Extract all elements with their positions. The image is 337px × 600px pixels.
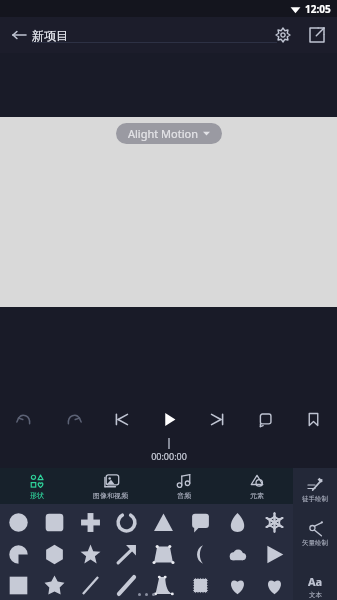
- button[interactable]: Loop: [241, 400, 289, 438]
- button[interactable]: Skip to start: [97, 400, 145, 438]
- button[interactable]: Shape 15: [219, 538, 256, 570]
- button[interactable]: Shape 23: [219, 570, 256, 600]
- button[interactable]: Shape 18: [36, 570, 72, 600]
- button[interactable]: 形状: [0, 468, 74, 504]
- button[interactable]: Shape 9: [0, 538, 36, 570]
- staticText: 00:00:00: [151, 450, 187, 462]
- button[interactable]: Shape 4: [108, 506, 145, 538]
- button[interactable]: Shape 14: [182, 538, 219, 570]
- button[interactable]: Shape 11: [72, 538, 108, 570]
- button[interactable]: Shape 21: [145, 570, 182, 600]
- staticText: 12:05: [305, 2, 331, 16]
- staticText: Aa: [308, 574, 323, 589]
- button[interactable]: Shape 7: [219, 506, 256, 538]
- button[interactable]: Play: [145, 400, 193, 438]
- button[interactable]: Export: [305, 23, 329, 47]
- button[interactable]: Shape 8: [256, 506, 293, 538]
- button[interactable]: Settings: [271, 23, 295, 47]
- button[interactable]: 新项目: [32, 28, 277, 43]
- button[interactable]: 徒手绘制: [293, 468, 337, 512]
- button[interactable]: Undo: [0, 400, 49, 438]
- button[interactable]: 元素: [220, 468, 293, 504]
- button[interactable]: Alight Motion: [116, 123, 222, 144]
- staticText: 新项目: [32, 28, 68, 43]
- button[interactable]: 矢量绘制: [293, 512, 337, 556]
- staticText: 矢量绘制: [302, 539, 328, 547]
- button[interactable]: Skip to end: [193, 400, 241, 438]
- staticText: 图像和视频: [93, 491, 128, 500]
- button[interactable]: Redo: [49, 400, 97, 438]
- button[interactable]: Shape 2: [36, 506, 72, 538]
- button[interactable]: Shape 22: [182, 570, 219, 600]
- staticText: 形状: [30, 491, 44, 500]
- staticText: 文本: [309, 591, 322, 599]
- button[interactable]: Shape 17: [0, 570, 36, 600]
- button[interactable]: 音频: [147, 468, 220, 504]
- staticText: 徒手绘制: [302, 495, 328, 503]
- button[interactable]: Shape 5: [145, 506, 182, 538]
- staticText: 元素: [250, 491, 264, 500]
- button[interactable]: Shape 16: [256, 538, 293, 570]
- staticText: Alight Motion: [128, 126, 198, 141]
- button[interactable]: Shape 1: [0, 506, 36, 538]
- button[interactable]: Shape 3: [72, 506, 108, 538]
- button[interactable]: Bookmark: [289, 400, 337, 438]
- button[interactable]: 图像和视频: [74, 468, 147, 504]
- button[interactable]: Shape 19: [72, 570, 108, 600]
- button[interactable]: Shape 24: [256, 570, 293, 600]
- button[interactable]: Shape 12: [108, 538, 145, 570]
- button[interactable]: Shape 6: [182, 506, 219, 538]
- button[interactable]: Shape 20: [108, 570, 145, 600]
- button[interactable]: Back: [8, 24, 30, 46]
- button[interactable]: Shape 10: [36, 538, 72, 570]
- button[interactable]: Aa: [293, 556, 337, 600]
- staticText: 音频: [177, 491, 191, 500]
- button[interactable]: Shape 13: [145, 538, 182, 570]
